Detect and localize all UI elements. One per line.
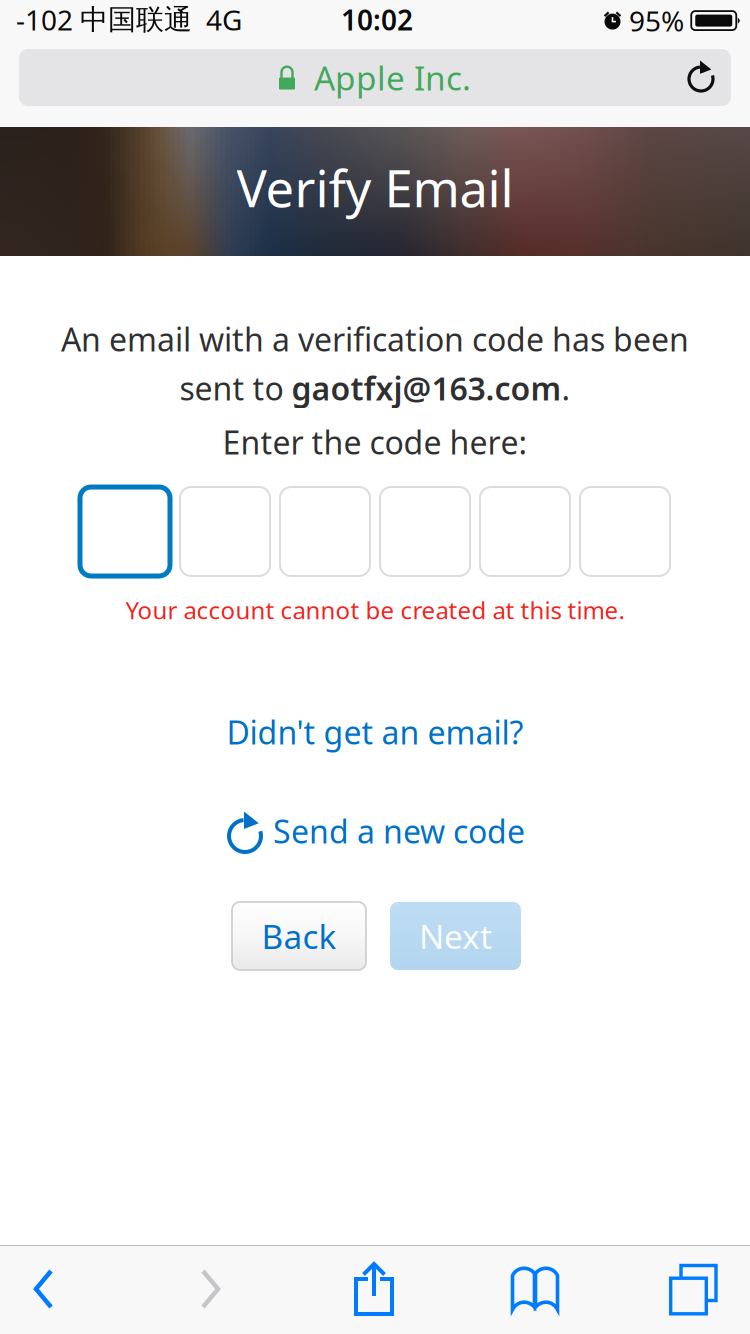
staticText: gaotfxj@163.com	[291, 367, 561, 409]
staticText: Didn't get an email?	[226, 711, 523, 753]
staticText: 中国联通	[80, 2, 192, 37]
staticText: 95%	[629, 2, 684, 39]
staticText: 10:02	[341, 1, 413, 38]
staticText: An email with a verification code has be…	[61, 318, 689, 360]
button[interactable]: Forward	[161, 1245, 261, 1333]
staticText: .	[561, 367, 570, 409]
staticText: Send a new code	[273, 810, 525, 852]
button[interactable]: Apple Inc.	[19, 49, 731, 106]
button[interactable]: Bookmarks	[485, 1245, 585, 1333]
staticText: Verify Email	[236, 154, 513, 221]
staticText: 4G	[192, 1, 242, 38]
staticText: -102	[16, 1, 80, 38]
staticText: Apple Inc.	[314, 55, 471, 100]
staticText: Back	[261, 914, 336, 958]
staticText: Enter the code here:	[222, 421, 527, 463]
button[interactable]: Next	[390, 902, 521, 970]
button[interactable]: Send a new code	[225, 808, 525, 854]
staticText: Next	[419, 914, 492, 958]
button[interactable]: Back	[0, 1245, 94, 1333]
button[interactable]: Didn't get an email?	[215, 710, 535, 754]
staticText: sent to	[179, 367, 291, 409]
staticText: Your account cannot be created at this t…	[125, 594, 624, 626]
button[interactable]: Tabs	[643, 1245, 743, 1333]
button[interactable]: Back	[232, 902, 366, 970]
button[interactable]: Share	[324, 1245, 424, 1333]
